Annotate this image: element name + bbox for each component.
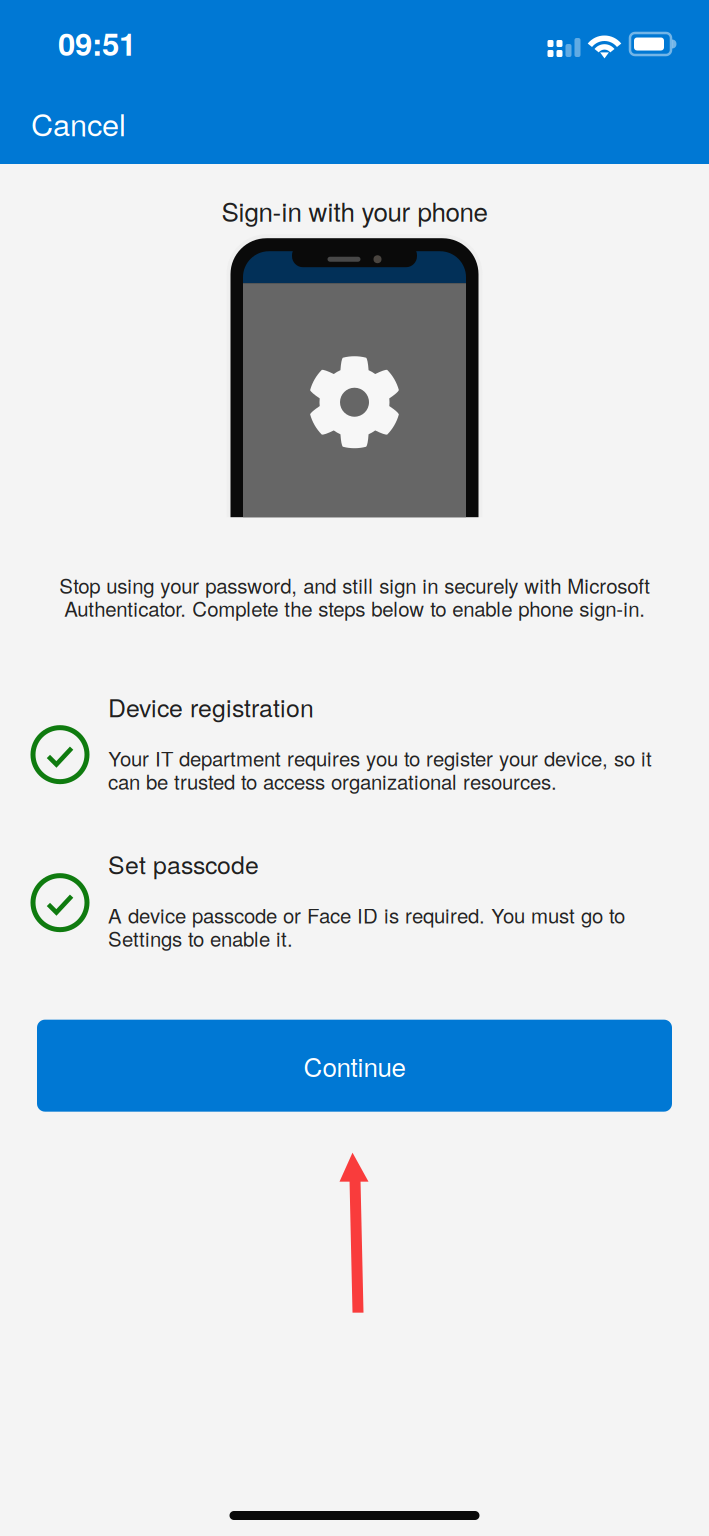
button[interactable]: Continue (37, 1020, 672, 1112)
staticText: Continue (303, 1047, 405, 1084)
staticText: Set passcode (108, 846, 259, 881)
staticText: A device passcode or Face ID is required… (108, 900, 625, 953)
staticText: Device registration (108, 689, 314, 724)
staticText: Cancel (31, 101, 126, 145)
button[interactable]: Cancel (0, 90, 157, 164)
staticText: Stop using your password, and still sign… (59, 570, 650, 623)
staticText: Sign-in with your phone (221, 192, 487, 229)
staticText: Your IT department requires you to regis… (108, 743, 652, 796)
staticText: 09:51 (58, 21, 136, 65)
